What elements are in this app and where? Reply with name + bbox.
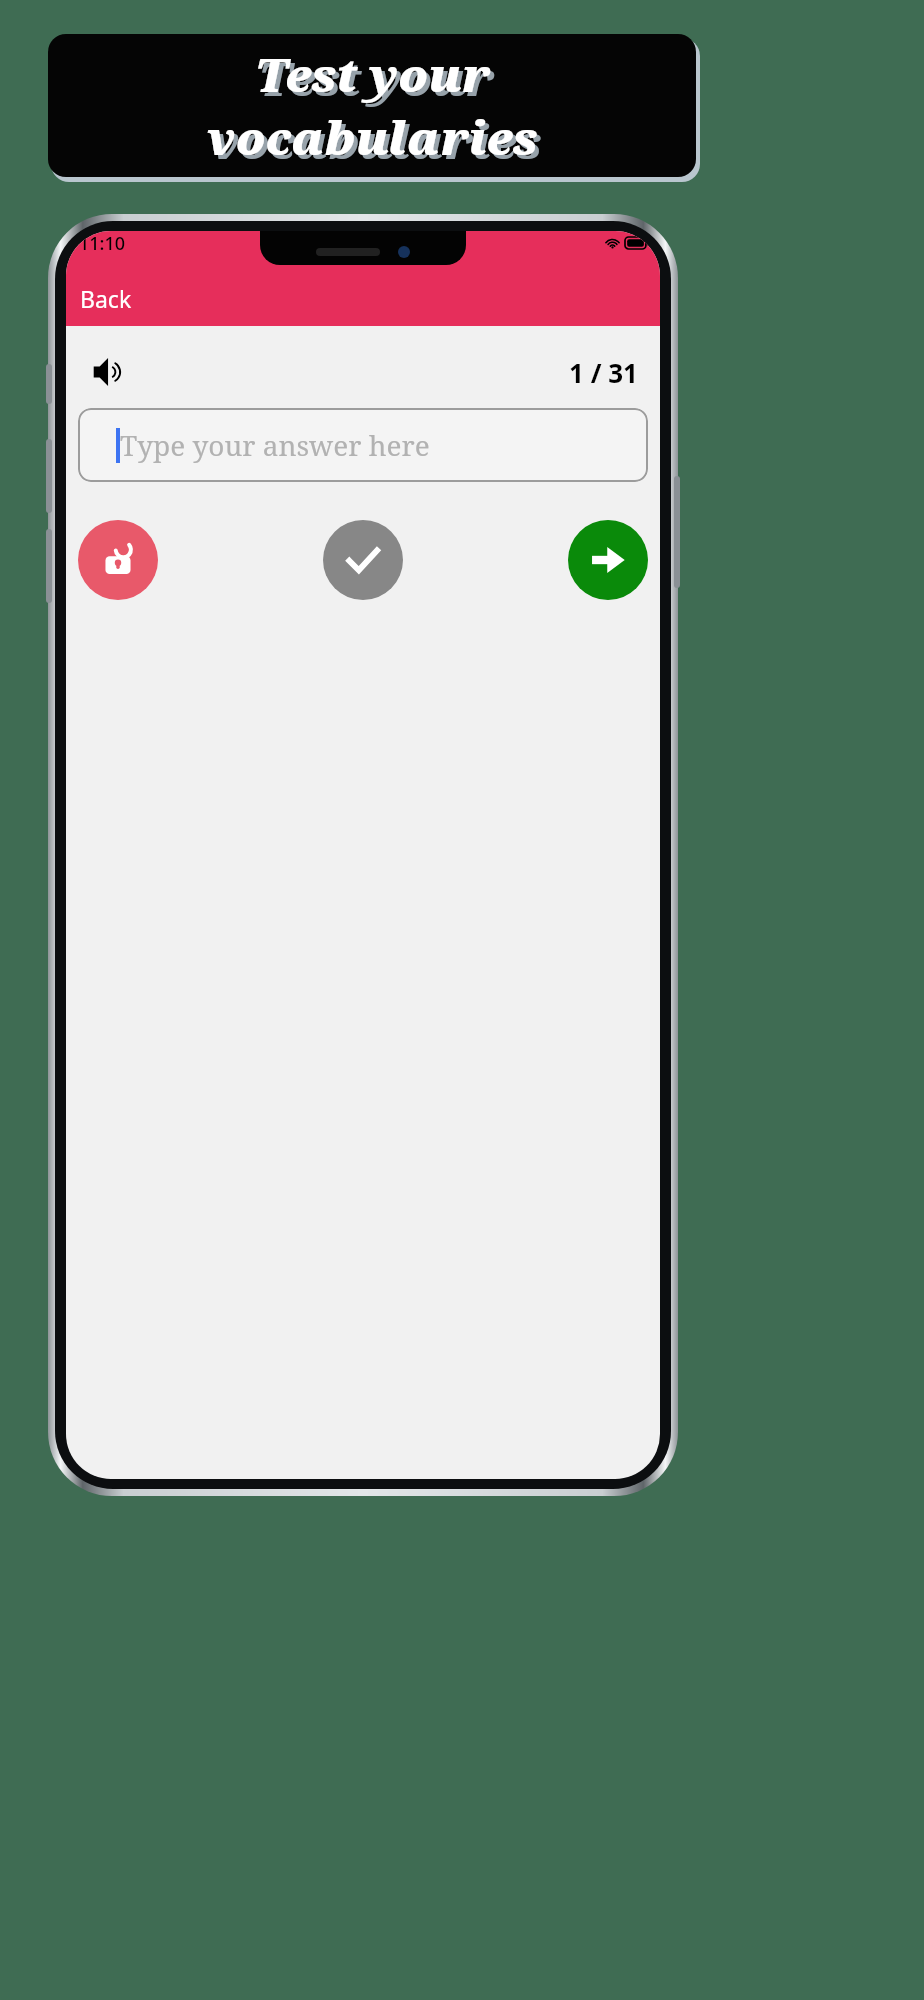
button[interactable]: Type your answer here [78, 408, 648, 482]
staticText: 11:10 [79, 231, 126, 256]
staticText: Back [80, 283, 132, 314]
button[interactable]: Check answer [323, 520, 403, 600]
staticText: 1 / 31 [569, 355, 638, 390]
button[interactable]: Back [66, 275, 150, 326]
staticText: vocabularies [211, 110, 542, 173]
button[interactable]: Next word [568, 520, 648, 600]
staticText: Test your [259, 47, 494, 110]
staticText: vocabularies [207, 106, 538, 169]
staticText: Test your [255, 43, 490, 106]
staticText: Type your answer here [120, 426, 430, 464]
button[interactable]: Reveal answer [78, 520, 158, 600]
button[interactable]: Play pronunciation [88, 352, 133, 392]
